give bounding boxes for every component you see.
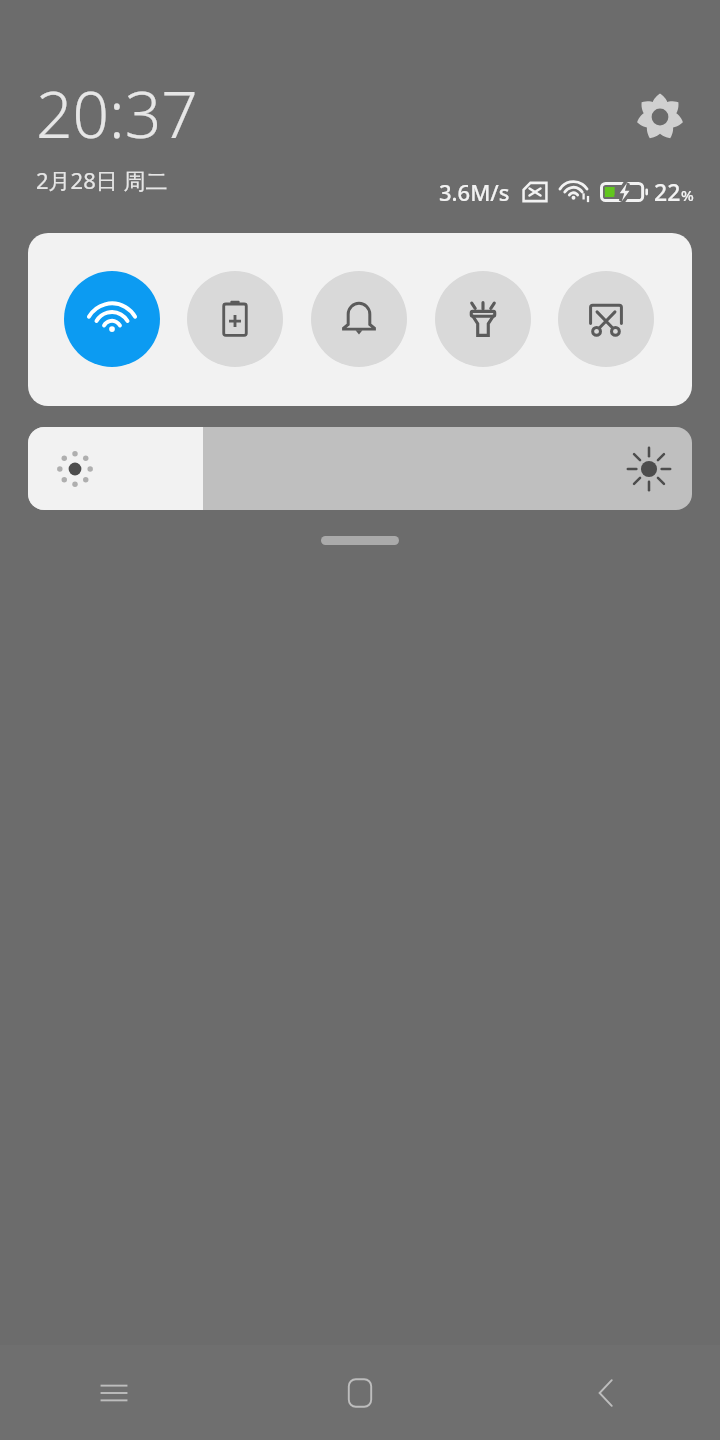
- staticText: 22: [654, 176, 681, 207]
- button[interactable]: Settings: [626, 83, 694, 151]
- button[interactable]: Wi-Fi: [64, 271, 160, 367]
- staticText: %: [681, 185, 694, 205]
- button[interactable]: Brightness: [28, 427, 692, 510]
- button[interactable]: Home: [240, 1345, 480, 1440]
- button[interactable]: Back: [480, 1345, 720, 1440]
- staticText: 3.6M/s: [439, 177, 510, 207]
- button[interactable]: Do not disturb: [311, 271, 407, 367]
- staticText: 2月28日 周二: [36, 165, 168, 195]
- button[interactable]: Screenshot: [558, 271, 654, 367]
- staticText: 20:37: [36, 70, 198, 157]
- button[interactable]: Flashlight: [435, 271, 531, 367]
- button[interactable]: Battery saver: [187, 271, 283, 367]
- button[interactable]: Recents: [0, 1345, 240, 1440]
